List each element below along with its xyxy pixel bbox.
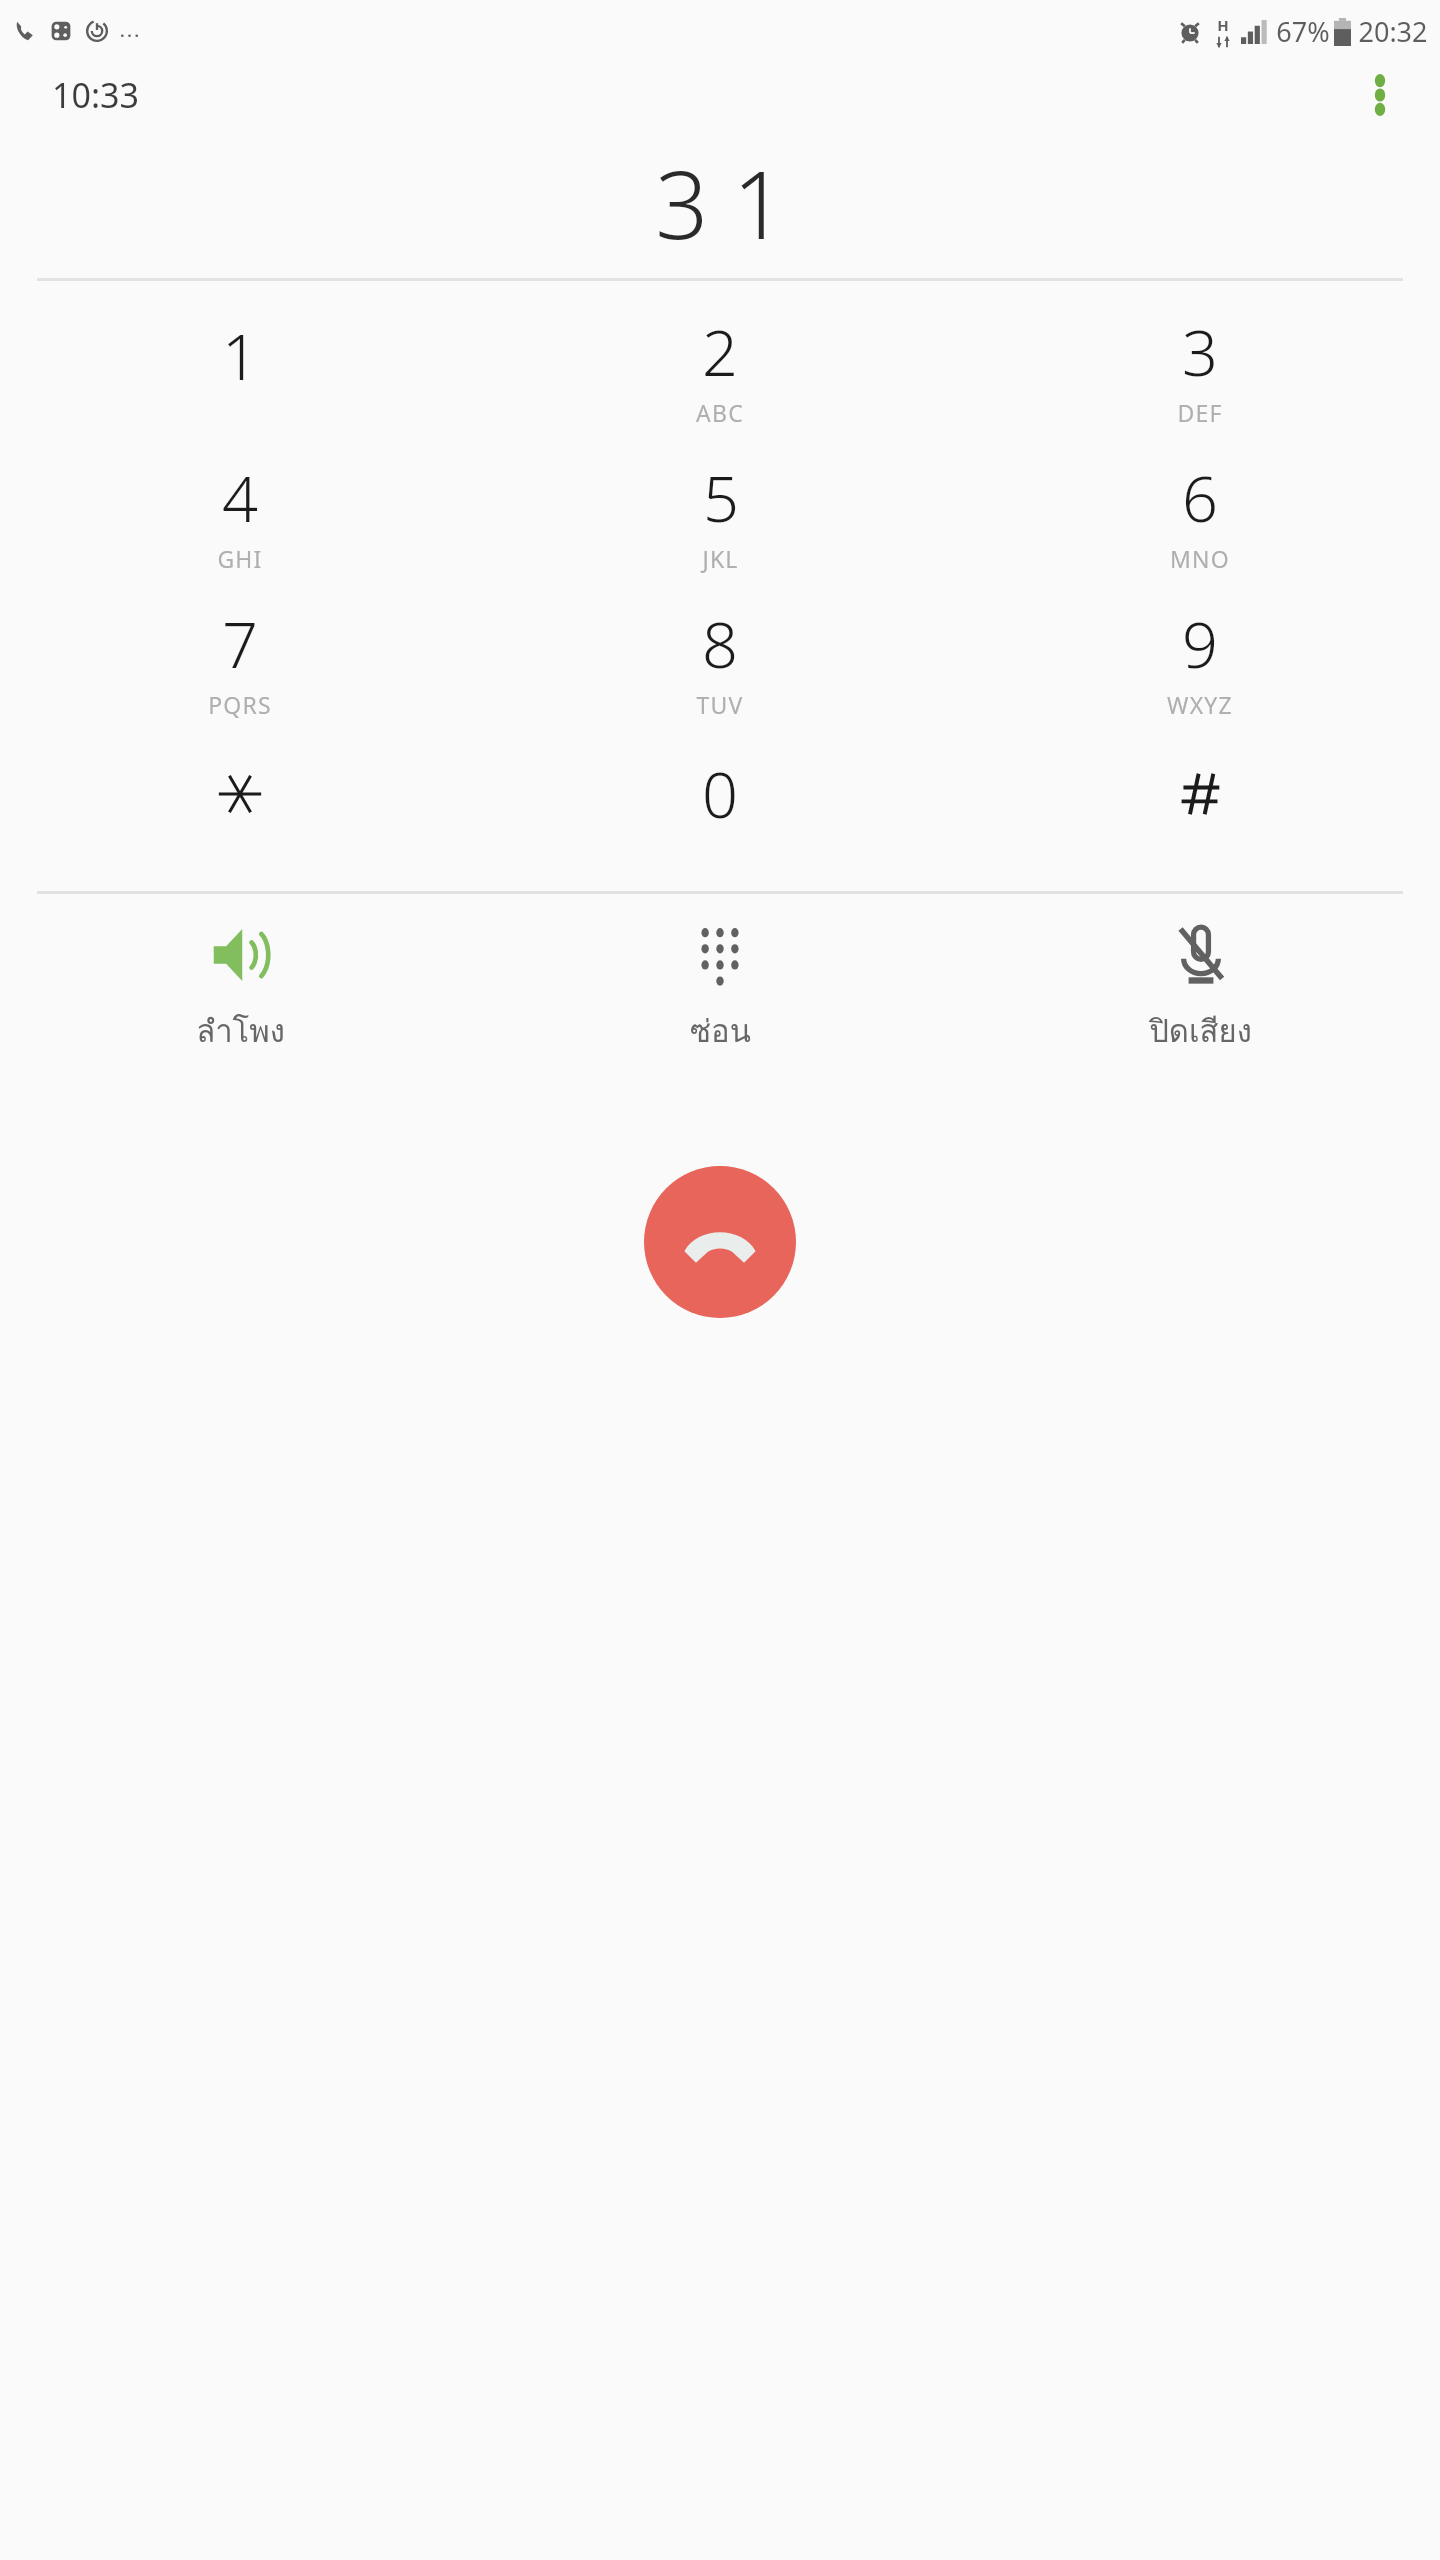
staticText: GHI <box>217 543 263 574</box>
staticText: ปิดเสียง <box>1149 1006 1252 1055</box>
staticText: 4 <box>222 455 258 541</box>
button[interactable]: 2 <box>480 295 960 441</box>
staticText: PQRS <box>208 689 272 720</box>
staticText: 20:32 <box>1358 13 1428 50</box>
staticText: 8 <box>702 601 738 687</box>
staticText: 3 1 <box>655 140 786 267</box>
button[interactable]: 5 <box>480 441 960 587</box>
button[interactable]: 6 <box>960 441 1440 587</box>
button[interactable]: Pound <box>960 733 1440 879</box>
staticText: ซ่อน <box>690 1006 751 1055</box>
staticText: MNO <box>1170 543 1230 574</box>
staticText: 2 <box>702 309 738 395</box>
button[interactable]: 7 <box>0 587 480 733</box>
button[interactable]: 0 <box>480 733 960 879</box>
staticText: WXYZ <box>1167 689 1233 720</box>
button[interactable]: ลำโพง <box>0 894 480 1104</box>
staticText: ABC <box>696 397 744 428</box>
button[interactable]: 4 <box>0 441 480 587</box>
staticText: H <box>1217 15 1229 35</box>
staticText: 9 <box>1182 601 1218 687</box>
staticText: 10:33 <box>52 72 139 118</box>
staticText: 0 <box>702 751 738 837</box>
staticText: 1 <box>222 313 258 399</box>
button[interactable]: ซ่อน <box>480 894 960 1104</box>
button[interactable]: ปิดเสียง <box>960 894 1440 1104</box>
staticText: 6 <box>1182 455 1218 541</box>
staticText: 7 <box>222 601 258 687</box>
staticText: 5 <box>703 455 739 541</box>
staticText: DEF <box>1177 397 1223 428</box>
staticText: 67% <box>1276 13 1330 50</box>
button[interactable]: End call <box>644 1166 796 1318</box>
staticText: JKL <box>702 543 739 574</box>
staticText: TUV <box>696 689 744 720</box>
button[interactable]: 1 <box>0 295 480 441</box>
staticText: 3 <box>1182 309 1218 395</box>
button[interactable]: 9 <box>960 587 1440 733</box>
button[interactable]: 8 <box>480 587 960 733</box>
button[interactable]: Star <box>0 733 480 879</box>
button[interactable]: 3 <box>960 295 1440 441</box>
staticText: ลำโพง <box>196 1006 285 1055</box>
button[interactable]: More options <box>1350 65 1410 125</box>
